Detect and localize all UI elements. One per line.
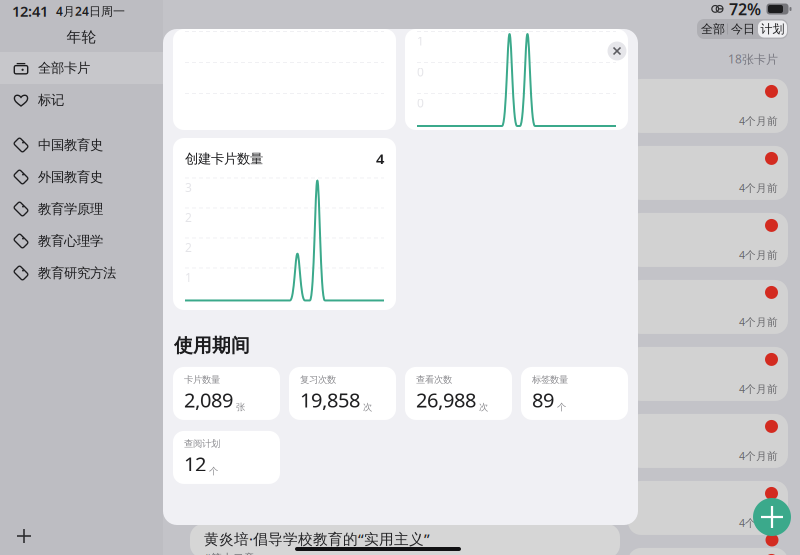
staticText: 4个月前 bbox=[739, 248, 778, 262]
staticText: 2 bbox=[185, 209, 192, 225]
button[interactable]: 中国教育史 bbox=[0, 129, 163, 161]
staticText: 2 bbox=[185, 239, 192, 255]
staticText: 今日 bbox=[731, 22, 755, 36]
button[interactable]: 全部 bbox=[698, 20, 728, 38]
button[interactable]: 外国教育史 bbox=[0, 161, 163, 193]
staticText: 教育学原理 bbox=[38, 201, 103, 217]
staticText: 18张卡片 bbox=[728, 51, 778, 67]
button[interactable]: 4个月前 bbox=[628, 347, 788, 401]
staticText: 12:41 bbox=[12, 1, 48, 21]
staticText: 卡片数量 bbox=[184, 374, 220, 385]
staticText: 4个月前 bbox=[739, 449, 778, 463]
staticText: 12 bbox=[184, 450, 206, 477]
staticText: 创建卡片数量 bbox=[185, 151, 263, 167]
staticText: 0 bbox=[417, 64, 424, 80]
staticText: 中国教育史 bbox=[38, 137, 103, 153]
staticText: 复习次数 bbox=[300, 374, 336, 385]
button[interactable]: 4个月前 bbox=[628, 280, 788, 334]
staticText: 1 bbox=[185, 269, 192, 285]
staticText: 全部 bbox=[701, 22, 725, 36]
staticText: 4个月前 bbox=[739, 315, 778, 329]
staticText: 3 bbox=[185, 179, 192, 195]
staticText: 2,089 bbox=[184, 386, 233, 413]
staticText: 计划 bbox=[760, 22, 784, 36]
staticText: 张 bbox=[236, 401, 245, 413]
staticText: 外国教育史 bbox=[38, 169, 103, 185]
staticText: 查阅计划 bbox=[184, 438, 220, 449]
staticText: 查看次数 bbox=[416, 374, 452, 385]
button[interactable]: 4个月前 bbox=[628, 548, 788, 555]
button[interactable]: 教育学原理 bbox=[0, 193, 163, 225]
staticText: 4个月前 bbox=[739, 516, 778, 530]
button[interactable]: 4个月前 bbox=[628, 414, 788, 468]
button[interactable]: 计划 bbox=[758, 20, 787, 37]
staticText: 89 bbox=[532, 386, 554, 413]
staticText: 72% bbox=[729, 0, 761, 20]
button[interactable]: 教育研究方法 bbox=[0, 257, 163, 289]
staticText: 次 bbox=[479, 401, 488, 413]
staticText: 教育研究方法 bbox=[38, 265, 116, 281]
staticText: 26,988 bbox=[416, 386, 476, 413]
staticText: 个 bbox=[557, 401, 566, 413]
button[interactable]: Close bbox=[604, 38, 630, 64]
staticText: 标签数量 bbox=[532, 374, 568, 385]
staticText: 次 bbox=[363, 401, 372, 413]
button[interactable]: 今日 bbox=[728, 20, 758, 38]
staticText: 全部卡片 bbox=[38, 60, 90, 76]
staticText: 黄炎培·倡导学校教育的“实用主义” bbox=[204, 529, 430, 548]
staticText: #第十二章 bbox=[204, 550, 255, 555]
button[interactable]: 全部卡片 bbox=[0, 52, 163, 84]
staticText: 4 bbox=[376, 149, 384, 168]
staticText: 标记 bbox=[38, 92, 64, 108]
staticText: 4个月前 bbox=[739, 114, 778, 128]
staticText: 4个月前 bbox=[739, 181, 778, 195]
button[interactable]: 4个月前 bbox=[628, 213, 788, 267]
staticText: 4月24日周一 bbox=[56, 3, 125, 19]
staticText: 教育心理学 bbox=[38, 233, 103, 249]
button[interactable]: 黄炎培·倡导学校教育的“实用主义” bbox=[190, 524, 620, 555]
staticText: 个 bbox=[209, 465, 218, 477]
staticText: 使用期间 bbox=[174, 334, 250, 357]
button[interactable]: 4个月前 bbox=[628, 481, 788, 535]
button[interactable]: New card bbox=[753, 487, 791, 547]
button[interactable]: 4个月前 bbox=[628, 79, 788, 133]
button[interactable]: 标记 bbox=[0, 84, 163, 116]
staticText: 19,858 bbox=[300, 386, 360, 413]
button[interactable]: Add bbox=[2, 517, 46, 555]
button[interactable]: 教育心理学 bbox=[0, 225, 163, 257]
staticText: 年轮 bbox=[66, 28, 96, 46]
staticText: 4个月前 bbox=[739, 382, 778, 396]
staticText: 0 bbox=[417, 95, 424, 111]
button[interactable]: 4个月前 bbox=[628, 146, 788, 200]
staticText: 1 bbox=[417, 33, 424, 49]
